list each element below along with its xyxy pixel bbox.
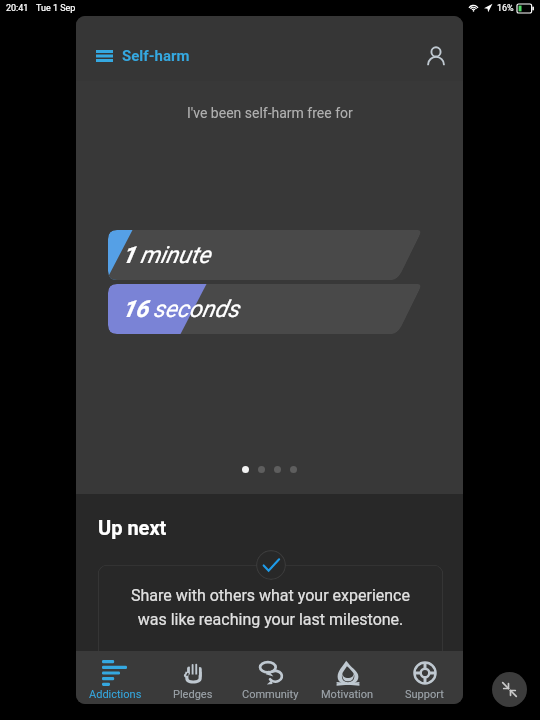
button[interactable]: Community	[232, 651, 309, 704]
staticText: Up next	[98, 516, 167, 539]
staticText: Tue 1 Sep	[36, 3, 76, 14]
button[interactable]: Pledges	[154, 651, 232, 704]
staticText: Pledges	[173, 688, 213, 701]
button[interactable]: Shrink window	[492, 672, 527, 707]
staticText: Community	[242, 688, 299, 701]
button[interactable]: Addictions	[76, 651, 154, 704]
button[interactable]: 16	[108, 284, 423, 334]
staticText: I've been self-harm free for	[187, 105, 353, 121]
staticText: seconds	[153, 295, 239, 323]
button[interactable]: Account	[422, 42, 450, 70]
staticText: Support	[405, 688, 444, 701]
button[interactable]: Open navigation menu	[96, 42, 118, 70]
staticText: minute	[140, 241, 211, 269]
staticText: 16%	[497, 3, 514, 14]
staticText: Addictions	[89, 688, 142, 701]
staticText: 16	[122, 295, 149, 323]
button[interactable]: Support	[386, 651, 463, 704]
button[interactable]: Motivation	[309, 651, 386, 704]
staticText: Share with others what your experience w…	[118, 586, 423, 629]
button[interactable]: 1	[108, 230, 423, 280]
staticText: Motivation	[321, 688, 374, 701]
staticText: 20:41	[6, 3, 29, 14]
button[interactable]: Share with others what your experience w…	[98, 565, 443, 675]
staticText: 1	[122, 241, 136, 269]
staticText: Self-harm	[122, 47, 190, 65]
